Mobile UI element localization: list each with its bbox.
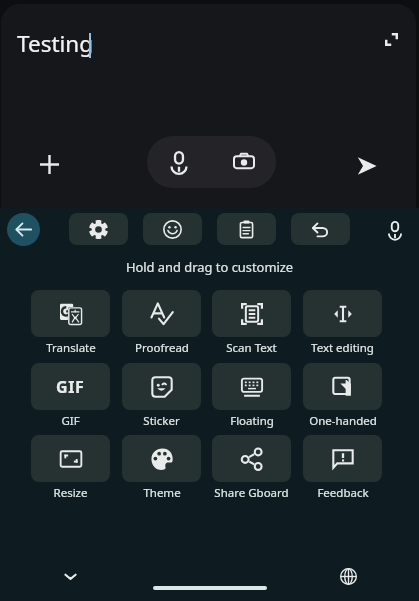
staticText: Sticker bbox=[143, 413, 180, 429]
button[interactable] bbox=[212, 290, 291, 337]
button[interactable] bbox=[303, 363, 382, 410]
button[interactable] bbox=[303, 435, 382, 482]
staticText: Text editing bbox=[311, 340, 374, 356]
button[interactable] bbox=[122, 363, 201, 410]
button[interactable]: Undo bbox=[291, 213, 350, 245]
button[interactable] bbox=[122, 290, 201, 337]
button[interactable]: Send bbox=[350, 149, 384, 183]
button[interactable]: Voice typing bbox=[378, 213, 411, 246]
button[interactable] bbox=[31, 435, 110, 482]
staticText: Share Gboard bbox=[214, 485, 289, 501]
staticText: Feedback bbox=[317, 485, 369, 501]
button[interactable]: GIF bbox=[31, 363, 110, 410]
button[interactable]: Emoji bbox=[143, 213, 202, 245]
button[interactable]: Clipboard bbox=[217, 213, 276, 245]
button[interactable]: Settings bbox=[69, 213, 128, 245]
button[interactable]: Voice input bbox=[147, 136, 211, 188]
button[interactable]: Add attachment bbox=[32, 147, 66, 181]
staticText: Translate bbox=[46, 340, 96, 356]
staticText: Hold and drag to customize bbox=[0, 258, 419, 276]
staticText: Scan Text bbox=[226, 340, 277, 356]
button[interactable]: Expand bbox=[374, 22, 408, 56]
button[interactable] bbox=[31, 290, 110, 337]
button[interactable]: Camera bbox=[211, 136, 276, 188]
button[interactable]: Back bbox=[7, 213, 40, 246]
staticText: Resize bbox=[53, 485, 88, 501]
staticText: Testing bbox=[17, 28, 94, 59]
button[interactable] bbox=[212, 435, 291, 482]
button[interactable] bbox=[212, 363, 291, 410]
staticText: Floating bbox=[230, 413, 274, 429]
button[interactable] bbox=[122, 435, 201, 482]
staticText: Theme bbox=[143, 485, 181, 501]
staticText: Proofread bbox=[135, 340, 189, 356]
button[interactable]: Hide keyboard bbox=[55, 561, 86, 592]
button[interactable] bbox=[303, 290, 382, 337]
staticText: One-handed bbox=[309, 413, 377, 429]
button[interactable]: Change language bbox=[333, 561, 364, 592]
staticText: GIF bbox=[56, 376, 85, 398]
staticText: GIF bbox=[61, 413, 80, 429]
